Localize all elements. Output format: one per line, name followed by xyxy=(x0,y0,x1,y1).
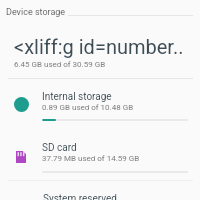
staticText: <xliff:g id=number.. xyxy=(14,35,184,58)
button[interactable]: SD card xyxy=(0,131,200,181)
button[interactable]: Internal storage xyxy=(0,79,200,129)
staticText: 37.79 MB used of 14.59 GB xyxy=(42,154,140,163)
staticText: SD card xyxy=(42,142,77,154)
staticText: Internal storage xyxy=(42,91,112,103)
staticText: 6.45 GB used of 30.59 GB xyxy=(14,60,106,69)
staticText: 0.89 GB used of 10.48 GB xyxy=(42,103,134,112)
staticText: Device storage xyxy=(6,7,66,18)
staticText: System reserved xyxy=(43,193,117,200)
